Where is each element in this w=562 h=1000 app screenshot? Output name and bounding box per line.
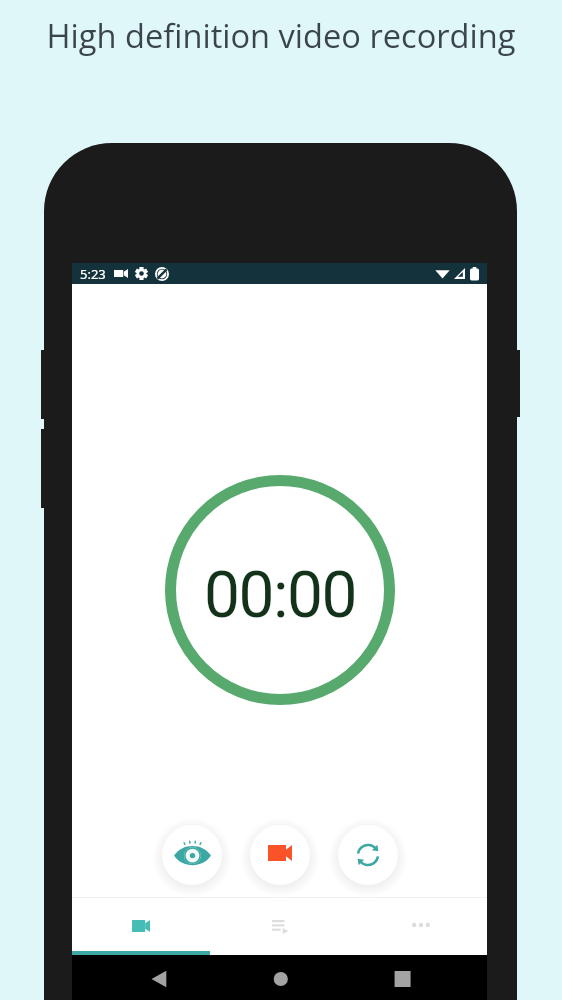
staticText: High definition video recording [0,13,562,57]
button[interactable]: Record [250,825,310,885]
button[interactable]: Switch camera [338,825,398,885]
button[interactable]: Recordings list [211,898,349,951]
staticText: 00:00 [204,558,356,633]
button[interactable]: Preview [162,825,222,885]
staticText: 5:23 [80,265,106,283]
button[interactable]: Record [72,898,211,951]
